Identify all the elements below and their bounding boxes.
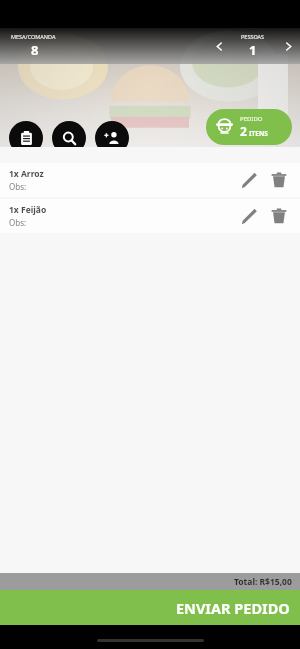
button[interactable]: Diminuir pessoas (208, 28, 230, 64)
staticText: PEDIDO (240, 115, 263, 123)
staticText: ITENS (249, 129, 268, 138)
staticText: 1x Arroz (9, 168, 44, 180)
staticText: Obs: (9, 181, 27, 192)
button[interactable]: Editar (234, 201, 264, 231)
button[interactable]: ENVIAR PEDIDO (0, 590, 300, 625)
staticText: 2 (240, 123, 247, 139)
button[interactable]: Adicionar pessoa (95, 121, 129, 155)
button[interactable]: Excluir (264, 165, 294, 195)
staticText: Total: R$15,00 (234, 576, 292, 588)
button[interactable]: Excluir (264, 201, 294, 231)
button[interactable]: Comanda (9, 121, 43, 155)
staticText: 1x Feijão (9, 204, 47, 216)
staticText: ENVIAR PEDIDO (176, 598, 290, 618)
staticText: MESA/COMANDA (11, 33, 56, 40)
staticText: Obs: (9, 217, 27, 228)
button[interactable]: Aumentar pessoas (276, 28, 300, 64)
staticText: 1 (249, 41, 257, 59)
staticText: PESSOAS (241, 33, 265, 40)
button[interactable]: 1x Feijão (0, 199, 300, 233)
button[interactable]: PEDIDO (206, 109, 292, 145)
staticText: 8 (31, 41, 39, 59)
button[interactable]: 1x Arroz (0, 163, 300, 197)
button[interactable]: Editar (234, 165, 264, 195)
button[interactable]: Buscar (52, 121, 86, 155)
